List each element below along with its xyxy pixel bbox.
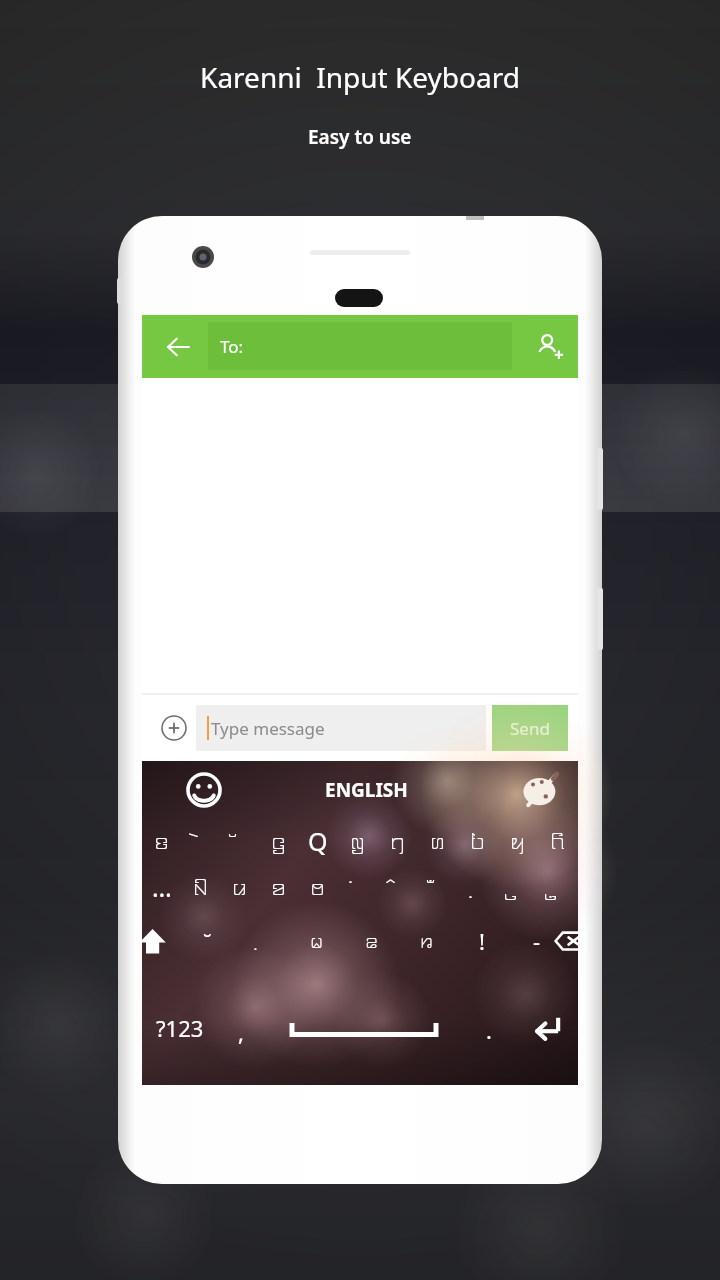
staticText: ,	[238, 1017, 244, 1047]
button[interactable]: ꤪ	[418, 863, 458, 911]
button[interactable]: ꤫	[458, 863, 498, 911]
button[interactable]: ꤜ	[338, 819, 378, 863]
button[interactable]: ꤗ	[289, 911, 344, 971]
button[interactable]: ꤨ	[378, 863, 418, 911]
staticText: ꤖ	[550, 829, 566, 854]
button[interactable]: ?123	[142, 971, 218, 1085]
button[interactable]: ꤣ	[220, 863, 259, 911]
button[interactable]: ,	[218, 971, 264, 1085]
button[interactable]: ꤝ	[458, 819, 498, 863]
staticText: ꤢ	[154, 829, 170, 854]
staticText: !	[479, 926, 485, 956]
button[interactable]: ꤡ	[181, 863, 220, 911]
button[interactable]: Shift	[132, 921, 172, 961]
button[interactable]: Send	[492, 705, 568, 751]
button[interactable]: ꤬	[498, 863, 538, 911]
staticText: …	[152, 870, 172, 904]
button[interactable]: Emoji	[180, 766, 228, 814]
staticText: ꤞ	[271, 829, 287, 854]
staticText: -	[533, 926, 541, 956]
button[interactable]: !	[454, 911, 509, 971]
staticText: ꤜ	[350, 829, 366, 854]
button[interactable]: ꤞ	[259, 819, 298, 863]
staticText: ꤘ	[365, 930, 379, 952]
button[interactable]: Add contact	[520, 315, 578, 378]
staticText: Q	[308, 824, 328, 858]
button[interactable]: Q	[298, 819, 338, 863]
button[interactable]: ꤩ	[220, 819, 259, 863]
button[interactable]: ꤭	[538, 863, 578, 911]
button[interactable]: ꤫	[234, 911, 289, 971]
staticText: .	[486, 1015, 492, 1045]
staticText: Easy to use	[308, 124, 412, 150]
staticText: ꤝ	[470, 829, 486, 854]
staticText: ?123	[156, 1013, 204, 1043]
button[interactable]: Space	[264, 971, 464, 1085]
button[interactable]: ꤦ	[338, 863, 378, 911]
staticText: Type message	[211, 717, 325, 740]
button[interactable]: .	[464, 971, 514, 1085]
button[interactable]: …	[142, 863, 181, 911]
staticText: ꤚ	[390, 829, 406, 854]
button[interactable]: Backspace	[548, 919, 592, 963]
button[interactable]: ꤤ	[259, 863, 298, 911]
staticText: ꤙ	[420, 930, 434, 952]
staticText: Karenni Input Keyboard	[200, 58, 520, 96]
button[interactable]: ꤟ	[498, 819, 538, 863]
button[interactable]: Enter	[514, 971, 578, 1085]
staticText: Send	[510, 717, 550, 740]
staticText: ꤗ	[310, 930, 324, 952]
staticText: ꤥ	[310, 875, 326, 900]
button[interactable]: Type message	[196, 705, 486, 751]
staticText: ꤛ	[430, 829, 446, 854]
button[interactable]: ꤘ	[344, 911, 399, 971]
staticText: ꤣ	[232, 875, 248, 900]
button[interactable]: ꤛ	[418, 819, 458, 863]
button[interactable]: ꤢ	[142, 819, 181, 863]
staticText: ꤟ	[510, 829, 526, 854]
button[interactable]: Back	[150, 315, 206, 378]
button[interactable]: ˘	[180, 911, 234, 971]
staticText: ˘	[203, 926, 212, 956]
button[interactable]: ꤖ	[538, 819, 578, 863]
button[interactable]: ꤙ	[399, 911, 454, 971]
button[interactable]: -	[509, 911, 564, 971]
button[interactable]: ENGLISH	[325, 777, 408, 803]
staticText: ꤤ	[271, 875, 287, 900]
button[interactable]: Attach	[152, 706, 196, 750]
button[interactable]: ꤥ	[298, 863, 338, 911]
button[interactable]: ꤧ	[181, 819, 220, 863]
staticText: ꤡ	[193, 875, 209, 900]
staticText: To:	[220, 335, 244, 358]
button[interactable]: ꤚ	[378, 819, 418, 863]
button[interactable]: Theme	[516, 765, 566, 815]
